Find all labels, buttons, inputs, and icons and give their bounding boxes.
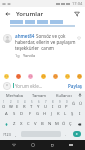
button[interactable]: K: [55, 110, 62, 118]
button[interactable]: Emoji: [40, 73, 46, 79]
staticText: Q: [2, 104, 6, 108]
button[interactable]: M: [53, 120, 60, 128]
button[interactable]: Period: [62, 130, 70, 138]
button[interactable]: 3: [14, 100, 21, 108]
staticText: 1g: [15, 53, 20, 58]
button[interactable]: F: [26, 110, 34, 118]
button[interactable]: Yorum ekle...: [15, 83, 68, 89]
staticText: .: [65, 132, 67, 137]
staticText: H: [43, 111, 47, 117]
staticText: W: [9, 104, 13, 108]
staticText: C: [27, 121, 30, 127]
staticText: O: [58, 104, 62, 108]
staticText: Y: [37, 104, 40, 108]
button[interactable]: Voice input: [76, 91, 83, 99]
button[interactable]: 6: [35, 100, 42, 108]
staticText: 2: [10, 100, 12, 104]
staticText: P: [65, 104, 68, 108]
staticText: 0: [66, 100, 68, 104]
staticText: Sonsöz ve çok: [36, 33, 66, 39]
staticText: S: [13, 111, 16, 117]
button[interactable]: V: [32, 120, 39, 128]
button[interactable]: S: [10, 110, 18, 118]
button[interactable]: Emoji: [52, 73, 58, 79]
staticText: B: [41, 121, 44, 127]
button[interactable]: L: [62, 110, 69, 118]
staticText: L: [64, 111, 67, 117]
button[interactable]: 5: [28, 100, 35, 108]
staticText: N: [48, 121, 52, 127]
button[interactable]: Key: [74, 120, 84, 128]
button[interactable]: D: [18, 110, 26, 118]
staticText: teşekkürler canım: [15, 45, 55, 51]
button[interactable]: X: [18, 120, 25, 128]
staticText: 3: [17, 100, 19, 104]
staticText: Ş: [71, 111, 74, 117]
button[interactable]: Filter: [72, 9, 82, 19]
staticText: 17:04: [72, 1, 83, 6]
staticText: Kullanıcı: [56, 93, 72, 98]
staticText: 7: [45, 100, 47, 104]
button[interactable]: Ş: [69, 110, 76, 118]
button[interactable]: 2: [7, 100, 14, 108]
button[interactable]: 0: [63, 100, 70, 108]
button[interactable]: Emoji: [64, 73, 70, 79]
button[interactable]: Back: [9, 140, 19, 150]
staticText: Ç: [69, 121, 72, 127]
button[interactable]: 8: [49, 100, 56, 108]
button[interactable]: Z: [11, 120, 18, 128]
button[interactable]: Back: [3, 9, 13, 19]
button[interactable]: 7: [42, 100, 49, 108]
staticText: J: [51, 111, 53, 117]
button[interactable]: G: [34, 110, 41, 118]
staticText: U: [44, 104, 48, 108]
button[interactable]: Merhaba: [2, 91, 26, 99]
button[interactable]: 1: [1, 100, 7, 108]
button[interactable]: Yanıtla: [23, 53, 36, 58]
button[interactable]: Emoji: [27, 73, 33, 79]
staticText: Yorum ekle...: [15, 83, 43, 89]
button[interactable]: Key: [1, 120, 11, 128]
button[interactable]: C: [25, 120, 32, 128]
button[interactable]: Emoji: [15, 73, 21, 79]
button[interactable]: A: [2, 110, 10, 118]
button[interactable]: J: [48, 110, 55, 118]
button[interactable]: Kullanıcı: [51, 91, 76, 99]
staticText: G: [36, 111, 40, 117]
button[interactable]: Ç: [67, 120, 74, 128]
button[interactable]: Ü: [77, 100, 84, 108]
button[interactable]: Ö: [60, 120, 67, 128]
button[interactable]: Home: [28, 140, 38, 150]
button[interactable]: 4: [21, 100, 28, 108]
button[interactable]: Paylaş: [68, 83, 82, 89]
button[interactable]: H: [41, 110, 48, 118]
staticText: Merhaba: [6, 93, 23, 98]
button[interactable]: Emoji: [3, 73, 9, 79]
button[interactable]: N: [46, 120, 53, 128]
staticText: Z: [13, 121, 16, 127]
staticText: Tamam: [32, 93, 46, 98]
button[interactable]: Tamam: [26, 91, 51, 99]
button[interactable]: Send: [73, 131, 81, 137]
staticText: E: [16, 104, 19, 108]
button[interactable]: 9: [56, 100, 63, 108]
staticText: Ö: [62, 121, 66, 127]
staticText: I: [52, 104, 54, 108]
button[interactable]: ?123: [1, 130, 12, 138]
staticText: D: [20, 111, 24, 117]
staticText: M: [55, 121, 59, 127]
button[interactable]: I: [76, 110, 83, 118]
button[interactable]: Recents: [47, 140, 57, 150]
button[interactable]: B: [39, 120, 46, 128]
staticText: T: [30, 104, 33, 108]
button[interactable]: Like: [76, 35, 82, 41]
staticText: 8: [52, 100, 54, 104]
button[interactable]: Ğ: [70, 100, 77, 108]
staticText: Paylaş: [68, 83, 82, 89]
staticText: X: [20, 121, 23, 127]
button[interactable]: Keyboard: [66, 140, 76, 150]
button[interactable]: Comma: [12, 130, 20, 138]
button[interactable]: ahmet84: [0, 32, 85, 59]
button[interactable]: Emoji: [76, 73, 82, 79]
